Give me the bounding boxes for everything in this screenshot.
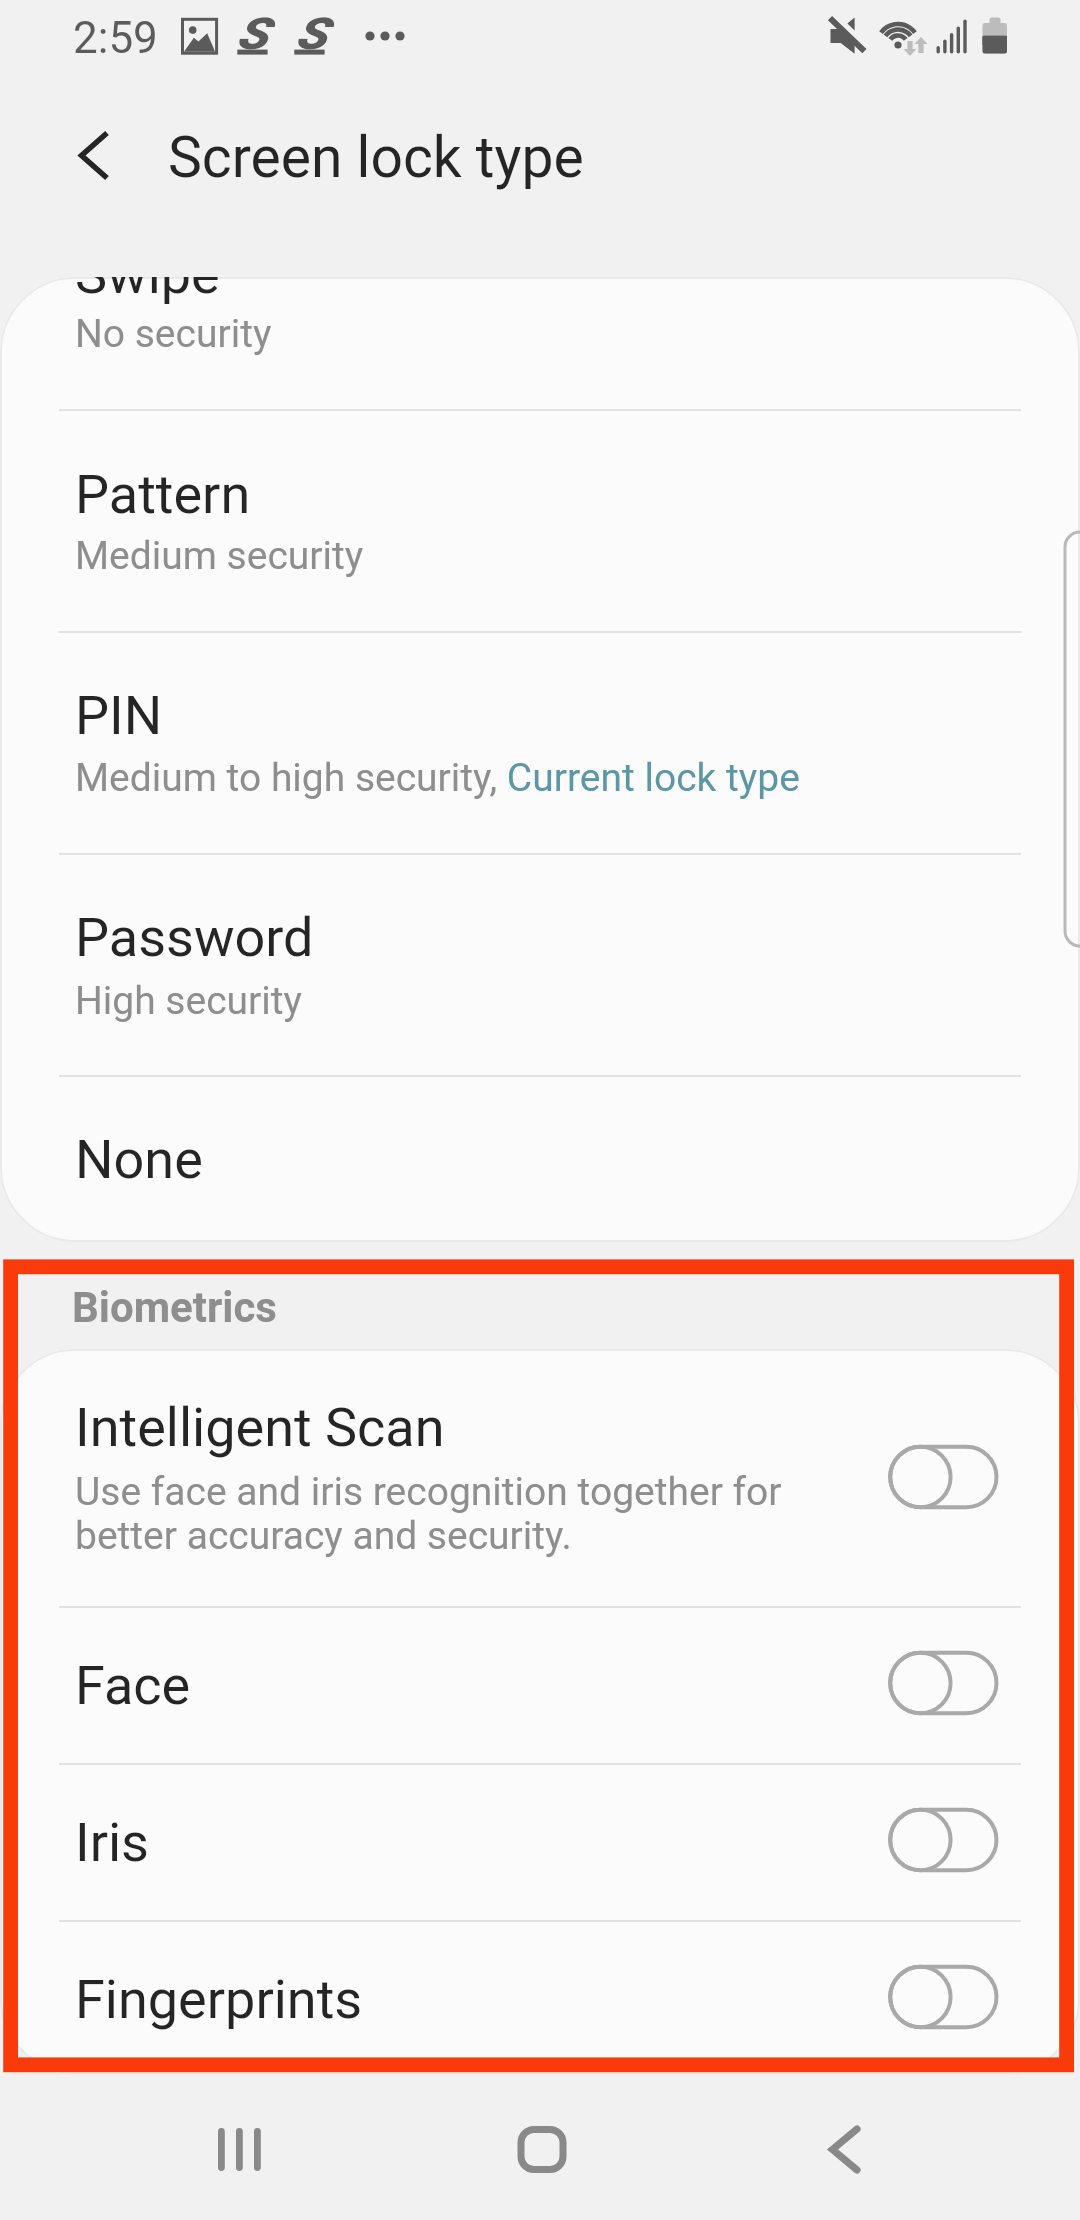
staticText: S xyxy=(236,8,268,60)
staticText: Face xyxy=(75,1654,191,1717)
staticText: Medium security xyxy=(75,533,364,579)
staticText: Password xyxy=(75,906,314,969)
button[interactable]: Swipe xyxy=(0,277,1080,409)
button[interactable]: Iris toggle xyxy=(886,1804,1002,1876)
button[interactable]: Home xyxy=(493,2102,589,2198)
staticText: Use face and iris recognition together f… xyxy=(75,1469,782,1515)
staticText: High security xyxy=(75,978,302,1024)
button[interactable]: Navigate up xyxy=(48,122,116,190)
staticText: 2:59 xyxy=(73,12,158,64)
staticText: Iris xyxy=(75,1811,149,1874)
button[interactable]: Pattern xyxy=(0,409,1080,631)
staticText: Intelligent Scan xyxy=(75,1396,445,1459)
button[interactable]: None xyxy=(0,1075,1080,1242)
button[interactable]: Fingerprints xyxy=(0,1920,1080,2074)
staticText: Pattern xyxy=(75,463,251,526)
button[interactable]: PIN xyxy=(0,631,1080,853)
button[interactable]: Iris xyxy=(0,1763,1080,1920)
button[interactable]: Intelligent Scan toggle xyxy=(886,1441,1002,1513)
button[interactable]: Fingerprints toggle xyxy=(886,1961,1002,2033)
staticText: Fingerprints xyxy=(75,1968,363,2031)
button[interactable]: Face xyxy=(0,1606,1080,1763)
staticText: No security xyxy=(75,311,272,357)
button[interactable]: Recent apps xyxy=(188,2102,284,2198)
button[interactable]: Face toggle xyxy=(886,1647,1002,1719)
staticText: None xyxy=(75,1128,203,1191)
button[interactable]: Password xyxy=(0,853,1080,1075)
button[interactable]: Intelligent Scan xyxy=(0,1349,1080,1606)
staticText: PIN xyxy=(75,684,163,747)
staticText: better accuracy and security. xyxy=(75,1513,572,1559)
staticText: S xyxy=(295,8,327,60)
staticText: Medium to high security, Current lock ty… xyxy=(75,755,800,801)
staticText: Screen lock type xyxy=(168,124,584,191)
staticText: Swipe xyxy=(75,277,220,306)
staticText: Biometrics xyxy=(72,1283,277,1332)
button[interactable]: Back xyxy=(796,2102,892,2198)
